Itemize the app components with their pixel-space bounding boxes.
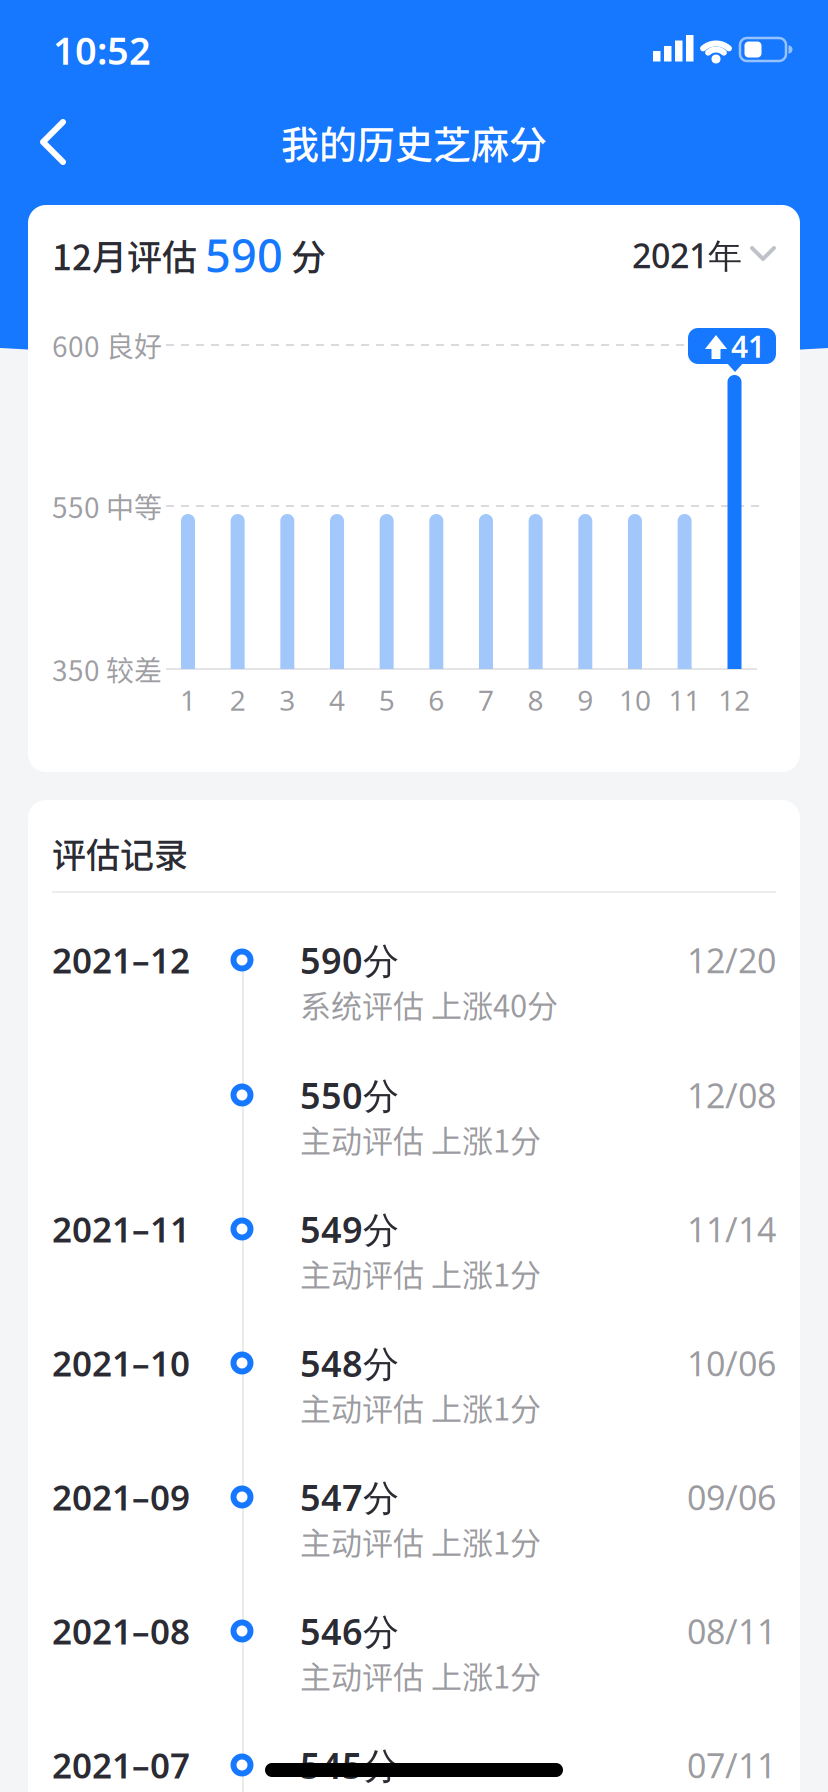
button[interactable]: Back	[8, 97, 98, 187]
staticText: 主动评估 上涨1分	[300, 1385, 541, 1429]
staticText: 547分	[300, 1472, 399, 1521]
staticText: 7	[478, 681, 494, 719]
staticText: 2	[230, 681, 246, 719]
staticText: 09/06	[687, 1474, 776, 1520]
staticText: 350 较差	[52, 649, 162, 689]
staticText: 2021年	[632, 232, 742, 278]
staticText: 548分	[300, 1338, 399, 1387]
staticText: 4	[329, 681, 345, 719]
staticText: 评估记录	[52, 828, 188, 878]
staticText: 主动评估 上涨1分	[300, 1519, 541, 1563]
staticText: 12月评估	[52, 230, 205, 280]
staticText: 主动评估 上涨1分	[300, 1251, 541, 1295]
staticText: 11/14	[687, 1206, 776, 1252]
staticText: 12	[718, 681, 750, 719]
staticText: 545分	[300, 1740, 399, 1789]
staticText: 590	[205, 224, 283, 286]
staticText: 8	[528, 681, 544, 719]
staticText: 1	[180, 681, 196, 719]
staticText: 2021–12	[52, 936, 190, 984]
staticText: 12/08	[687, 1072, 776, 1118]
staticText: 549分	[300, 1204, 399, 1253]
staticText: 2021–09	[52, 1473, 190, 1521]
staticText: 主动评估 上涨1分	[300, 1117, 541, 1161]
staticText: 9	[577, 681, 593, 719]
staticText: 546分	[300, 1606, 399, 1655]
staticText: 07/11	[687, 1742, 776, 1788]
staticText: 我的历史芝麻分	[281, 114, 547, 169]
staticText: 550分	[300, 1070, 399, 1119]
staticText: 08/11	[687, 1608, 776, 1654]
staticText: 2021–10	[52, 1339, 190, 1387]
staticText: 2021–08	[52, 1607, 190, 1655]
staticText: 3	[279, 681, 295, 719]
staticText: 主动评估 上涨1分	[300, 1653, 541, 1697]
staticText: 600 良好	[52, 325, 162, 365]
staticText: 分	[283, 230, 326, 280]
staticText: 系统评估 上涨40分	[300, 982, 558, 1026]
staticText: 10	[619, 681, 651, 719]
staticText: 590分	[300, 935, 399, 984]
staticText: 550 中等	[52, 486, 162, 526]
staticText: 10:52	[53, 24, 151, 76]
staticText: 2021–11	[52, 1205, 190, 1253]
staticText: 12/20	[687, 937, 776, 983]
button[interactable]: 2021年	[632, 232, 776, 278]
staticText: 41	[731, 326, 765, 366]
staticText: 10/06	[687, 1340, 776, 1386]
staticText: 2021–07	[52, 1741, 190, 1789]
staticText: 11	[669, 681, 701, 719]
staticText: 6	[428, 681, 444, 719]
staticText: 5	[379, 681, 395, 719]
